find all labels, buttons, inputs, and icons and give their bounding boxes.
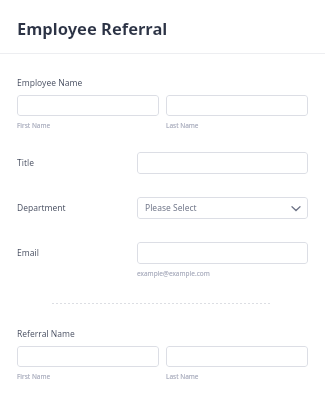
staticText: Employee Referral: [17, 17, 168, 39]
button[interactable]: [17, 95, 159, 116]
button[interactable]: [166, 346, 308, 367]
staticText: Referral Name: [17, 328, 75, 340]
staticText: example@example.com: [137, 269, 210, 278]
button[interactable]: [17, 346, 159, 367]
button[interactable]: [137, 152, 308, 174]
button[interactable]: [137, 242, 308, 264]
staticText: Last Name: [166, 372, 199, 381]
staticText: Title: [17, 157, 34, 169]
button[interactable]: [166, 95, 308, 116]
button[interactable]: Department select: [137, 197, 308, 219]
staticText: Last Name: [166, 121, 199, 130]
staticText: First Name: [17, 372, 51, 381]
staticText: Please Select: [145, 202, 197, 214]
staticText: First Name: [17, 121, 51, 130]
staticText: Employee Name: [17, 77, 83, 89]
staticText: Email: [17, 247, 39, 259]
staticText: Department: [17, 202, 66, 214]
